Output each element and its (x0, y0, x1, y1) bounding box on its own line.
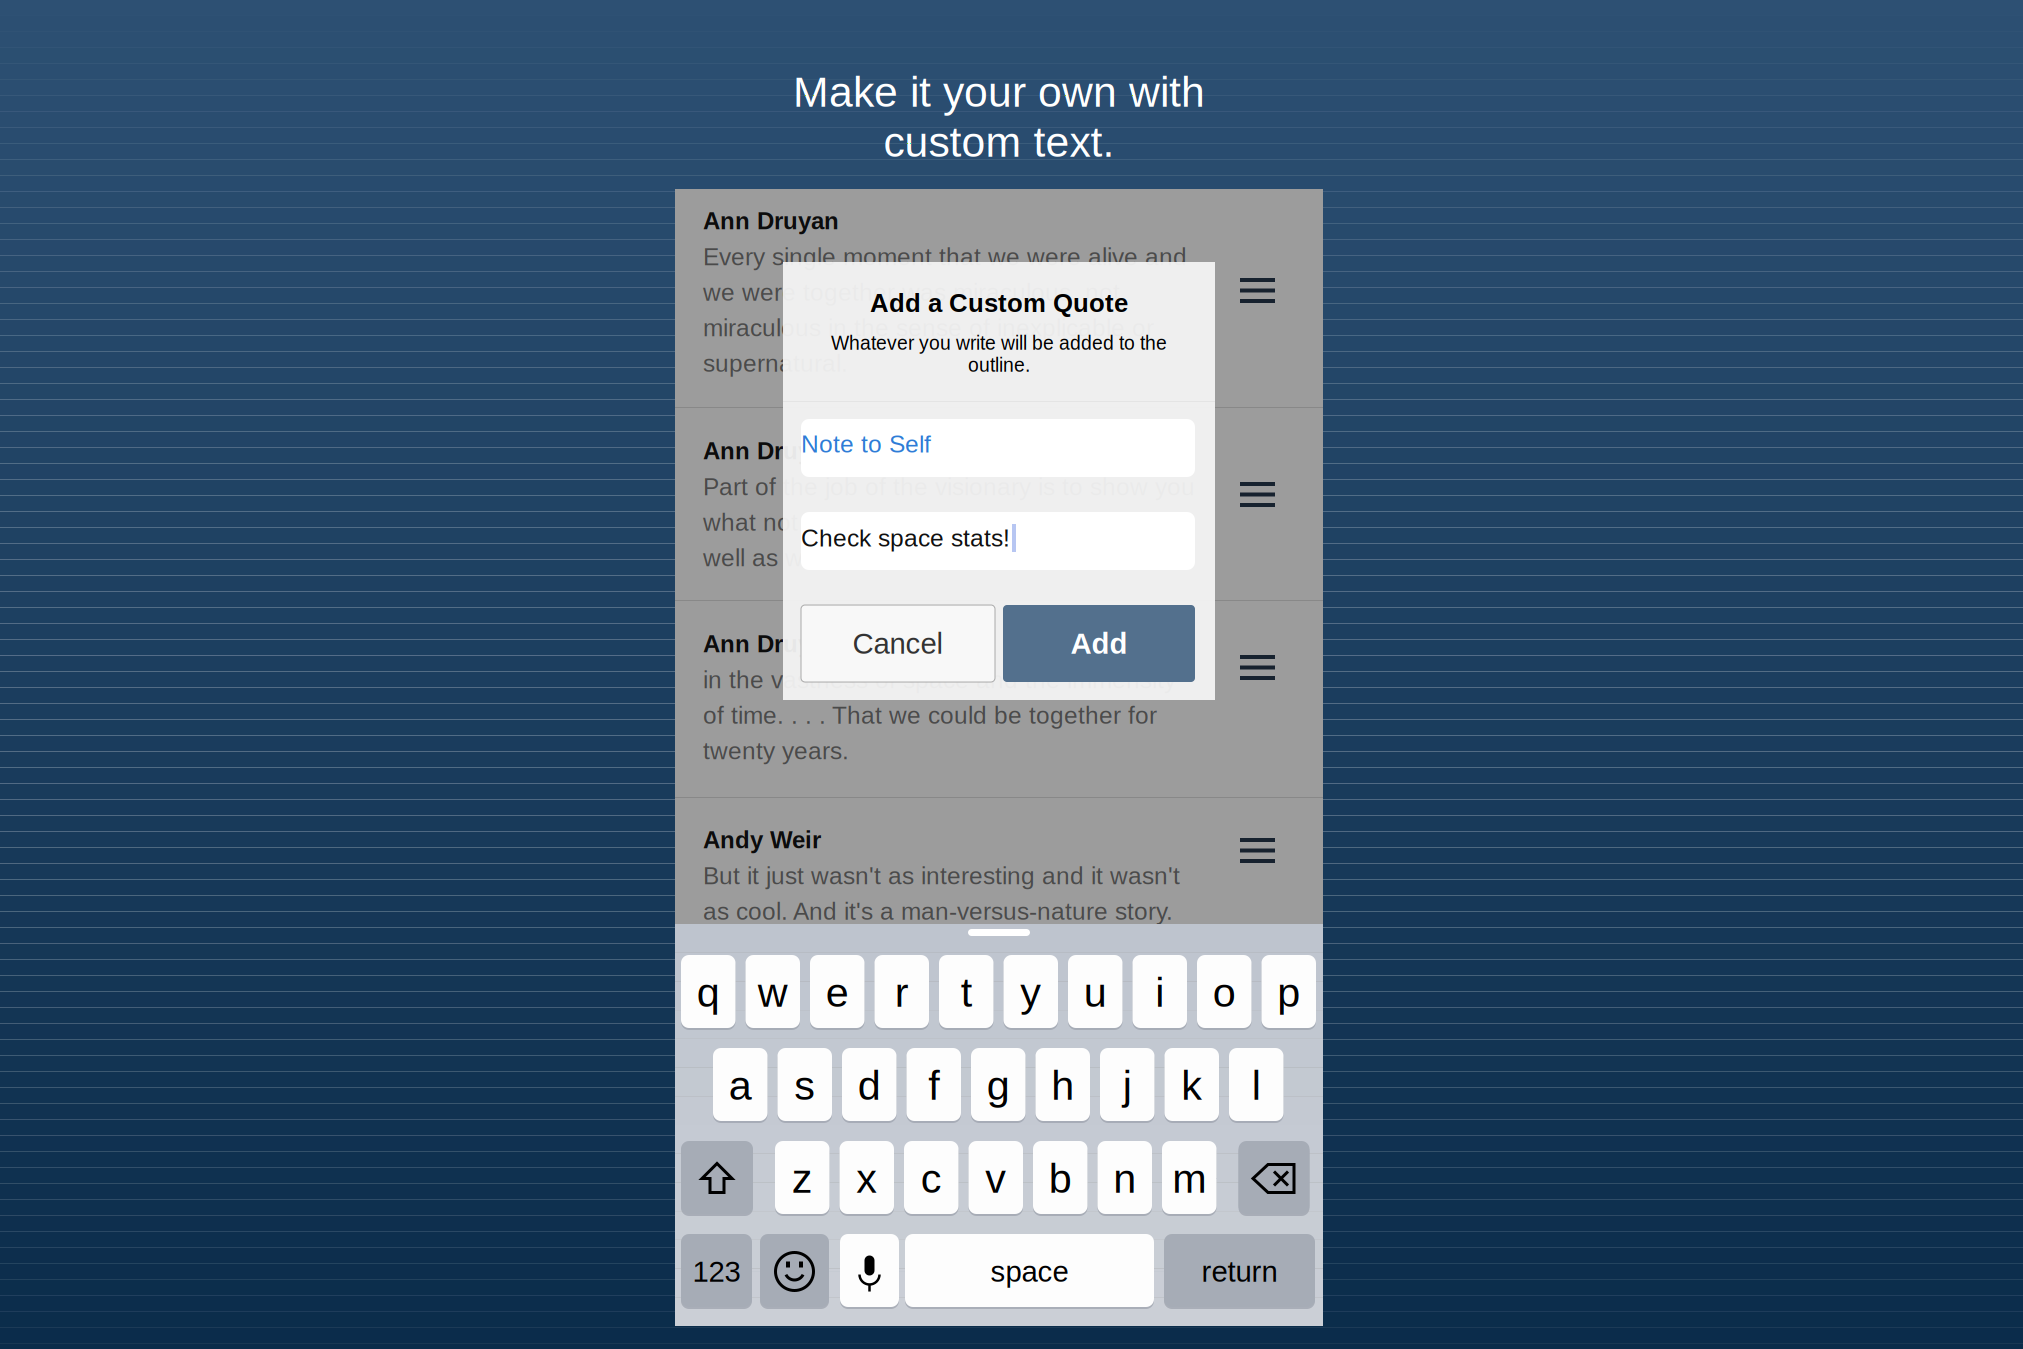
staticText: custom text. (883, 118, 1114, 166)
button[interactable]: g (971, 1049, 1025, 1122)
staticText: Note to Self (801, 430, 931, 458)
button[interactable]: k (1164, 1049, 1219, 1122)
staticText: c (921, 1155, 942, 1202)
staticText: l (1252, 1062, 1261, 1109)
staticText: Andy Weir (703, 827, 821, 853)
button[interactable]: t (939, 956, 993, 1029)
button[interactable]: Emoji (760, 1235, 829, 1308)
button[interactable]: y (1003, 956, 1058, 1029)
staticText: Ann Druyan (703, 438, 839, 464)
staticText: f (928, 1062, 939, 1109)
button[interactable]: m (1162, 1142, 1216, 1215)
button[interactable]: b (1033, 1142, 1087, 1215)
button[interactable]: a (713, 1049, 767, 1122)
staticText: what not to do, as (703, 509, 901, 536)
button[interactable]: c (904, 1142, 958, 1215)
button[interactable]: p (1261, 956, 1316, 1029)
staticText: i (1155, 969, 1164, 1016)
staticText: Add a Custom Quote (870, 289, 1128, 317)
staticText: q (697, 969, 720, 1016)
staticText: t (961, 969, 972, 1016)
button[interactable]: e (810, 956, 864, 1029)
button[interactable]: Dictate (840, 1235, 899, 1308)
button[interactable]: v (968, 1142, 1023, 1215)
button[interactable]: Add (1003, 605, 1195, 682)
staticText: Add (1070, 627, 1127, 660)
button[interactable]: z (775, 1142, 829, 1215)
staticText: r (895, 969, 909, 1016)
staticText: Check space stats! (801, 524, 1010, 552)
button[interactable]: 123 (681, 1235, 752, 1308)
staticText: n (1113, 1155, 1136, 1202)
staticText: j (1123, 1062, 1132, 1109)
staticText: w (758, 969, 788, 1016)
staticText: o (1213, 969, 1236, 1016)
staticText: supernatural. (703, 350, 848, 377)
button[interactable]: u (1068, 956, 1122, 1029)
button[interactable]: o (1197, 956, 1251, 1029)
staticText: m (1172, 1155, 1206, 1202)
staticText: v (985, 1155, 1006, 1202)
staticText: Whatever you write will be added to the (831, 332, 1167, 354)
staticText: h (1051, 1062, 1074, 1109)
staticText: e (826, 969, 849, 1016)
staticText: in the vastness of space and the immensi… (703, 666, 1176, 693)
staticText: d (858, 1062, 881, 1109)
button[interactable]: d (842, 1049, 896, 1122)
staticText: Part of the job of the visionary is to s… (703, 473, 1195, 500)
staticText: miraculous in the sense of inexplicable … (703, 314, 1154, 341)
staticText: x (856, 1155, 877, 1202)
staticText: of time. . . . That we could be together… (703, 702, 1157, 729)
staticText: b (1049, 1155, 1072, 1202)
button[interactable]: f (906, 1049, 961, 1122)
button[interactable]: Shift (681, 1142, 753, 1215)
button[interactable]: return (1164, 1235, 1315, 1308)
button[interactable]: space (905, 1235, 1154, 1308)
staticText: But it just wasn't as interesting and it… (703, 862, 1180, 889)
staticText: space (990, 1255, 1068, 1288)
button[interactable]: s (777, 1049, 832, 1122)
staticText: k (1181, 1062, 1202, 1109)
button[interactable]: x (839, 1142, 894, 1215)
button[interactable]: j (1100, 1049, 1154, 1122)
button[interactable]: r (874, 956, 929, 1029)
staticText: Cancel (852, 627, 943, 660)
staticText: a (729, 1062, 752, 1109)
button[interactable]: w (745, 956, 800, 1029)
staticText: s (794, 1062, 815, 1109)
staticText: z (792, 1155, 813, 1202)
staticText: 123 (692, 1255, 740, 1288)
staticText: Make it your own with (793, 68, 1205, 116)
button[interactable]: l (1229, 1049, 1283, 1122)
staticText: Ann Druyan (703, 631, 839, 657)
button[interactable]: h (1035, 1049, 1090, 1122)
button[interactable]: q (681, 956, 735, 1029)
staticText: y (1020, 969, 1041, 1016)
staticText: we were together was miraculous, not (703, 279, 1120, 306)
staticText: return (1201, 1255, 1277, 1288)
button[interactable]: Delete (1238, 1142, 1309, 1215)
staticText: g (987, 1062, 1010, 1109)
staticText: p (1277, 969, 1300, 1016)
staticText: Ann Druyan (703, 208, 839, 234)
staticText: well as what to do. (703, 544, 908, 571)
staticText: as cool. And it's a man-versus-nature st… (703, 898, 1173, 925)
staticText: Every single moment that we were alive a… (703, 243, 1187, 270)
staticText: outline. (968, 354, 1030, 376)
staticText: twenty years. (703, 737, 849, 764)
button[interactable]: i (1132, 956, 1187, 1029)
button[interactable]: Cancel (801, 605, 995, 682)
button[interactable]: n (1097, 1142, 1152, 1215)
staticText: u (1084, 969, 1107, 1016)
